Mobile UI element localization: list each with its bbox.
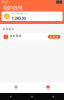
- staticText: 去提现: [50, 35, 59, 38]
- button[interactable]: Home: [21, 93, 43, 100]
- staticText: 借款额度: [10, 34, 22, 37]
- staticText: 1,280.00: [11, 16, 25, 21]
- button[interactable]: 借款额度: [1, 33, 63, 41]
- button[interactable]: Back: [0, 93, 21, 100]
- button[interactable]: 首页: [0, 83, 32, 93]
- button[interactable]: 我的: [32, 83, 64, 93]
- staticText: ⬛⬛: [56, 1, 62, 4]
- button[interactable]: 账户余额(元): [1, 11, 63, 21]
- button[interactable]: Recents: [43, 93, 64, 100]
- staticText: 我的: [47, 89, 49, 90]
- staticText: 常用服务: [3, 27, 15, 31]
- staticText: 我的钱包: [2, 5, 22, 11]
- staticText: 9:41: [2, 1, 9, 4]
- staticText: 账户余额(元): [11, 12, 28, 15]
- staticText: 最高20万: [10, 38, 15, 39]
